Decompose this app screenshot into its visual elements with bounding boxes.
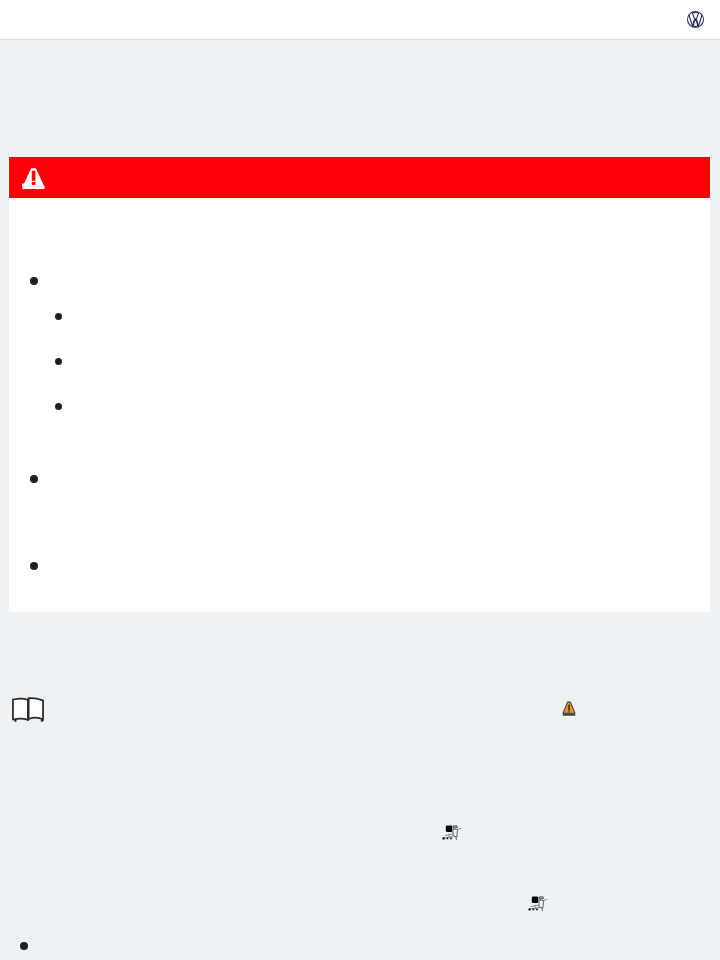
other: Warning bbox=[22, 167, 45, 190]
button[interactable]: Child seat bbox=[442, 824, 462, 842]
button[interactable]: Child seat bbox=[528, 895, 548, 913]
button[interactable]: Volkswagen home bbox=[687, 11, 704, 28]
button[interactable]: Caution bbox=[562, 701, 576, 716]
button[interactable]: Owner's manual reference bbox=[12, 697, 44, 722]
button[interactable]: Warning bbox=[9, 157, 710, 198]
button[interactable]: Volkswagen home bbox=[0, 0, 720, 39]
